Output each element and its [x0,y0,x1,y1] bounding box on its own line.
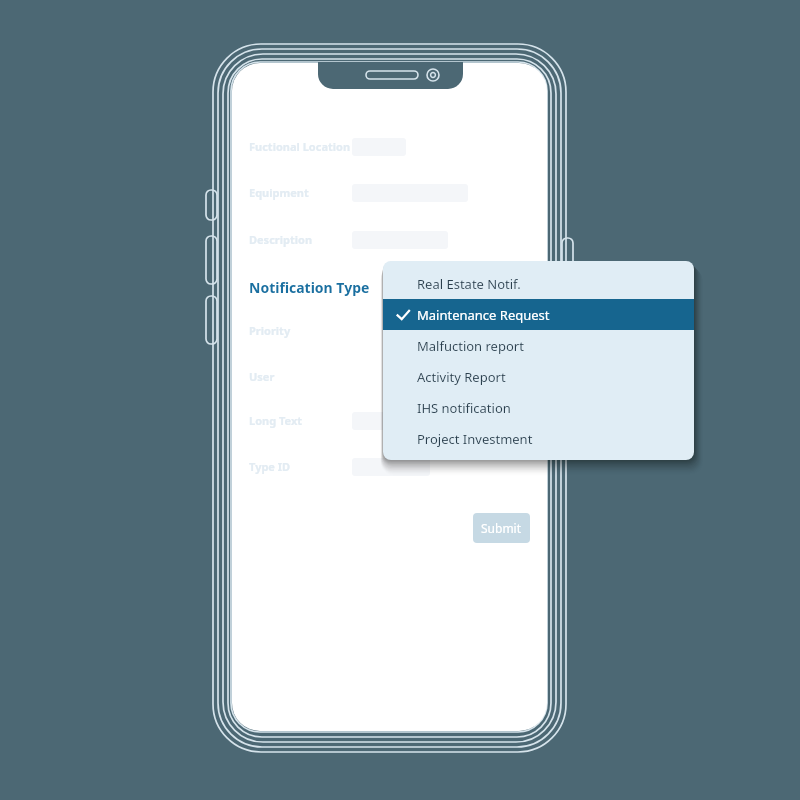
button[interactable]: Submit [473,513,530,543]
staticText: Real Estate Notif. [417,275,521,293]
staticText: Maintenance Request [417,306,550,324]
staticText: Malfuction report [417,337,524,355]
button[interactable]: Real Estate Notif. [383,268,694,299]
button[interactable]: IHS notification [383,392,694,423]
button[interactable]: Activity Report [383,361,694,392]
staticText: Long Text [249,413,303,428]
staticText: Activity Report [417,368,506,386]
staticText: User [249,369,275,384]
button[interactable] [352,412,452,430]
button[interactable] [352,458,430,476]
staticText: Priority [249,323,291,338]
staticText: Equipment [249,185,309,200]
button[interactable]: Malfuction report [383,330,694,361]
staticText: Notification Type [249,278,370,297]
button[interactable]: Maintenance Request [383,299,694,330]
staticText: Description [249,232,313,247]
staticText: Fuctional Location [249,139,351,154]
staticText: Project Investment [417,430,533,448]
button[interactable]: Project Investment [383,423,694,454]
staticText: IHS notification [417,399,511,417]
staticText: Type ID [249,459,291,474]
staticText: Submit [481,520,522,536]
